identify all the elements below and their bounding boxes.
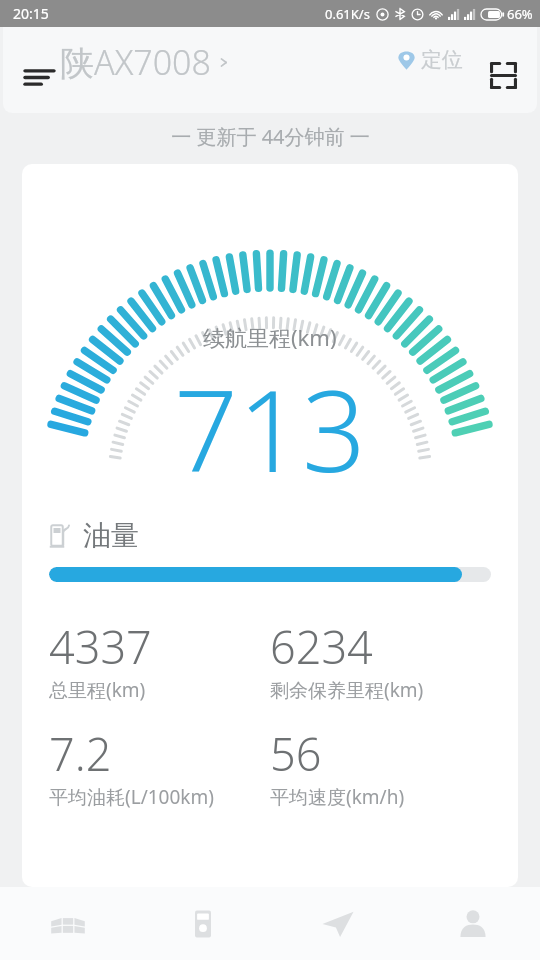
button[interactable]: 6234 (270, 616, 491, 703)
button[interactable]: Profile (405, 887, 540, 960)
button[interactable]: Dashboard (0, 887, 135, 960)
button[interactable]: 56 (270, 723, 491, 810)
staticText: 56 (270, 723, 322, 784)
button[interactable]: 陕AX7008 (60, 39, 231, 85)
staticText: 油量 (83, 518, 139, 553)
staticText: 66% (507, 5, 533, 23)
staticText: 4337 (49, 616, 152, 677)
staticText: 713 (174, 352, 366, 505)
staticText: 7.2 (49, 723, 112, 784)
button[interactable]: 定位 (397, 47, 463, 73)
staticText: 一 更新于 44分钟前 一 (171, 123, 370, 150)
staticText: 总里程(km) (49, 677, 146, 703)
staticText: 20:15 (13, 4, 49, 23)
staticText: 6234 (270, 616, 373, 677)
staticText: 陕AX7008 (60, 39, 211, 85)
button[interactable]: Scan (477, 49, 529, 101)
staticText: 平均油耗(L/100km) (49, 784, 214, 810)
staticText: 平均速度(km/h) (270, 784, 405, 810)
button[interactable]: Remote (135, 887, 270, 960)
button[interactable]: 4337 (49, 616, 270, 703)
staticText: 剩余保养里程(km) (270, 677, 424, 703)
staticText: 续航里程(km) (203, 322, 337, 352)
staticText: 定位 (421, 47, 463, 73)
button[interactable]: Navigation (270, 887, 405, 960)
staticText: 0.61K/s (325, 5, 370, 23)
button[interactable]: Menu (15, 53, 63, 101)
button[interactable]: 7.2 (49, 723, 270, 810)
